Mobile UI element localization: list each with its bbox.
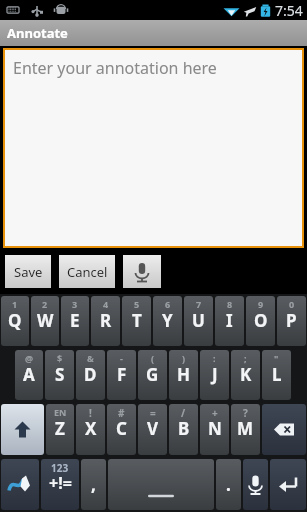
staticText: E [70,309,80,332]
button[interactable]: : [200,350,229,400]
button[interactable]: 8 [215,296,244,346]
button[interactable]: 1 [1,296,29,346]
staticText: A [23,363,35,386]
staticText: V [147,417,159,440]
button[interactable]: Enter your annotation here [5,50,302,246]
staticText: 2 [42,298,48,310]
button[interactable]: # [107,404,136,455]
staticText: K [240,363,252,386]
button[interactable]: Cancel [59,255,115,288]
staticText: Cancel [67,263,108,281]
button[interactable]: @ [15,350,43,400]
staticText: B [178,417,190,440]
staticText: 5 [134,298,140,310]
button[interactable]: , [81,459,106,510]
staticText: ; [244,352,247,364]
staticText: ! [89,406,92,420]
button[interactable]: 3 [61,296,89,346]
staticText: M [237,417,254,440]
staticText: # [118,406,125,420]
button[interactable]: 0 [277,296,306,346]
staticText: " [274,352,279,364]
button[interactable]: ( [138,350,167,400]
staticText: 4 [103,298,109,310]
button[interactable]: Voice input [243,459,268,510]
staticText: G [146,363,159,386]
button[interactable]: Backspace [262,404,306,455]
staticText: O [254,309,268,332]
staticText: 3 [72,298,78,310]
staticText: F [117,363,127,386]
staticText: U [192,309,205,332]
staticText: 0 [289,298,295,310]
staticText: - [120,352,123,364]
button[interactable]: Save [5,255,51,288]
staticText: S [55,363,65,386]
button[interactable]: ! [76,404,105,455]
staticText: C [116,417,127,440]
staticText: 8 [227,298,233,310]
staticText: L [272,363,282,386]
button[interactable]: . [216,459,241,510]
button[interactable]: 9 [246,296,275,346]
staticText: $ [57,352,63,364]
staticText: . [226,473,231,496]
staticText: R [100,309,112,332]
button[interactable]: Enter [270,459,306,510]
staticText: EN [54,406,67,418]
staticText: 1 [12,298,18,310]
button[interactable]: - [107,350,136,400]
staticText: D [84,363,97,386]
staticText: 123 [51,461,69,475]
button[interactable]: EN [46,404,74,455]
button[interactable]: ? [231,404,260,455]
staticText: 7:54 [275,1,303,20]
staticText: Z [55,417,65,440]
button[interactable]: 5 [122,296,151,346]
staticText: ? [243,406,248,420]
staticText: + [212,406,218,420]
button[interactable]: Handwriting input [1,459,39,510]
staticText: Annotate [7,24,68,42]
staticText: I [226,309,233,332]
staticText: 7 [196,298,202,310]
button[interactable]: Shift [1,404,44,455]
staticText: 6 [165,298,171,310]
staticText: N [208,417,222,440]
button[interactable]: 7 [184,296,213,346]
staticText: & [87,352,94,364]
staticText: = [150,406,156,420]
button[interactable]: / [169,404,198,455]
staticText: / [181,406,186,420]
button[interactable]: & [76,350,105,400]
staticText: J [212,363,218,386]
button[interactable]: 2 [31,296,59,346]
staticText: W [37,309,54,332]
staticText: Enter your annotation here [13,57,217,79]
button[interactable]: Voice input [123,255,161,288]
staticText: P [286,309,297,332]
button[interactable]: 123 [41,459,79,510]
staticText: X [85,417,97,440]
button[interactable]: + [200,404,229,455]
staticText: Save [14,263,43,281]
button[interactable]: ; [231,350,260,400]
staticText: @ [25,352,34,364]
staticText: Y [162,309,173,332]
staticText: Q [8,309,22,332]
button[interactable]: = [138,404,167,455]
button[interactable]: Space [108,459,214,510]
staticText: +!= [49,472,72,494]
staticText: 9 [258,298,264,310]
staticText: ( [151,352,155,364]
button[interactable]: 6 [153,296,182,346]
button[interactable]: $ [45,350,74,400]
staticText: T [132,309,142,332]
staticText: H [177,363,191,386]
button[interactable]: ) [169,350,198,400]
staticText: , [91,473,96,496]
button[interactable]: " [262,350,291,400]
staticText: : [213,352,216,364]
button[interactable]: 4 [91,296,120,346]
staticText: ) [182,352,186,364]
